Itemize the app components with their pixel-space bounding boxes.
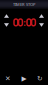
staticText: : [23, 16, 26, 29]
button[interactable]: Decrease minutes [2, 21, 11, 29]
button[interactable]: Increase seconds [37, 12, 46, 20]
button[interactable]: Cancel timer [0, 72, 16, 85]
button[interactable]: Increase minutes [2, 12, 11, 20]
button[interactable]: Start timer [16, 72, 32, 85]
staticText: ↻ [37, 75, 43, 82]
button[interactable]: TIMER STOP [0, 0, 48, 9]
staticText: ▶ [21, 75, 26, 82]
button[interactable]: Reset timer [32, 72, 48, 85]
staticText: ✕ [5, 75, 11, 82]
button[interactable]: Decrease seconds [37, 21, 46, 29]
staticText: TIMER STOP [13, 2, 35, 7]
